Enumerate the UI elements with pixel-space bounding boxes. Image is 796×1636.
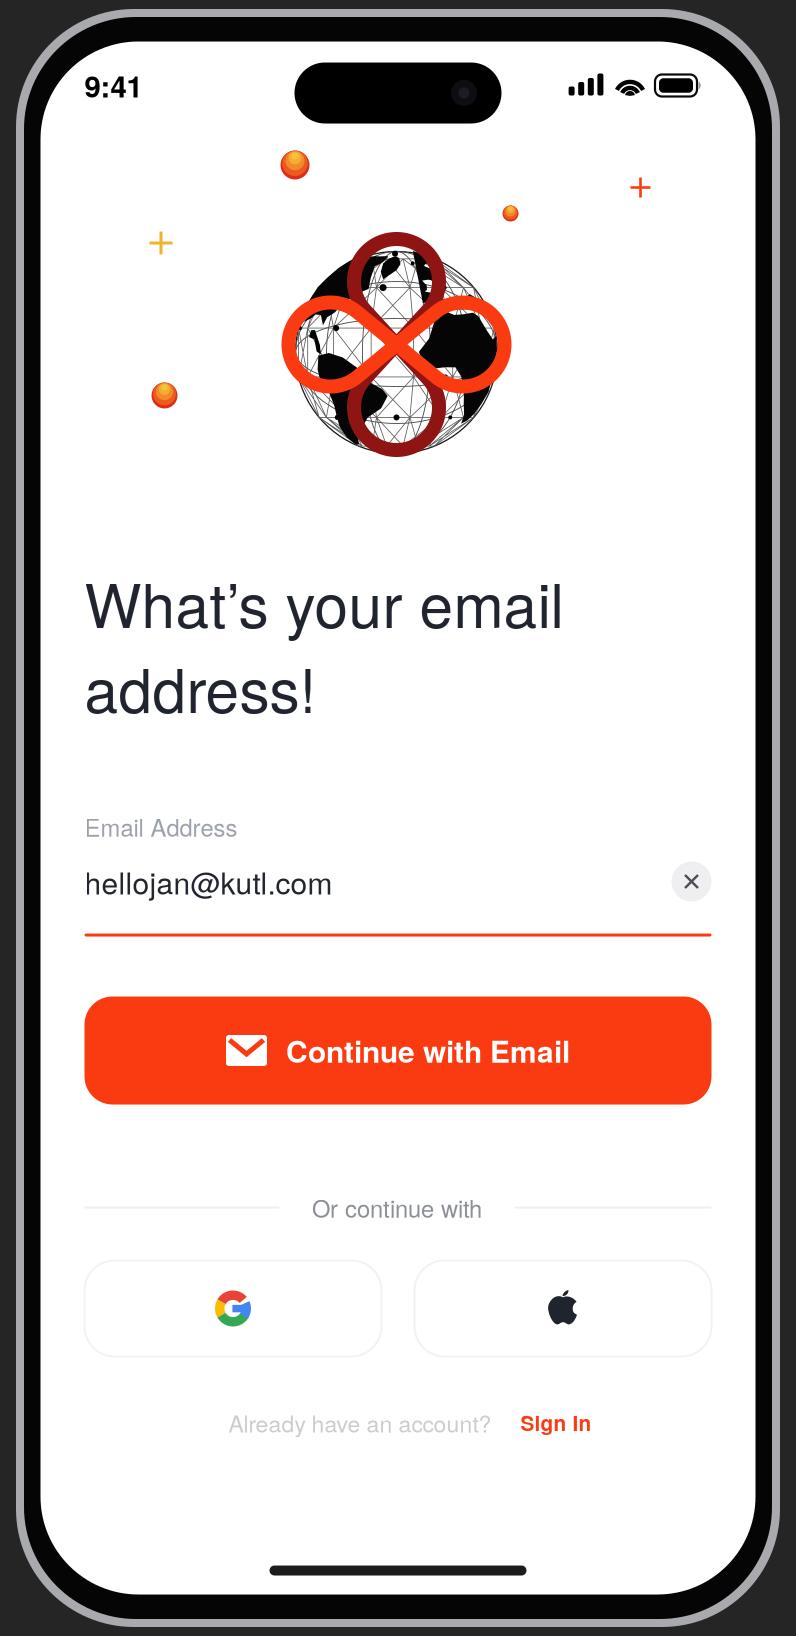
button[interactable]: Continue with Google — [84, 1260, 381, 1356]
staticText: address! — [84, 644, 316, 730]
staticText: Email Address — [84, 809, 237, 843]
staticText: Continue with Email — [286, 1029, 570, 1072]
staticText: What’s your email — [84, 559, 563, 645]
staticText: 9:41 — [84, 64, 142, 106]
button[interactable]: Sign In — [520, 1408, 591, 1437]
button[interactable]: Continue with Email — [84, 996, 711, 1104]
staticText: Or continue with — [312, 1190, 482, 1224]
staticText: hellojan@kutl.com — [84, 860, 332, 903]
button[interactable]: Clear text — [671, 861, 711, 901]
staticText: Sign In — [520, 1408, 591, 1437]
button[interactable]: Continue with Apple — [414, 1260, 711, 1356]
staticText: Already have an account? — [228, 1406, 491, 1439]
